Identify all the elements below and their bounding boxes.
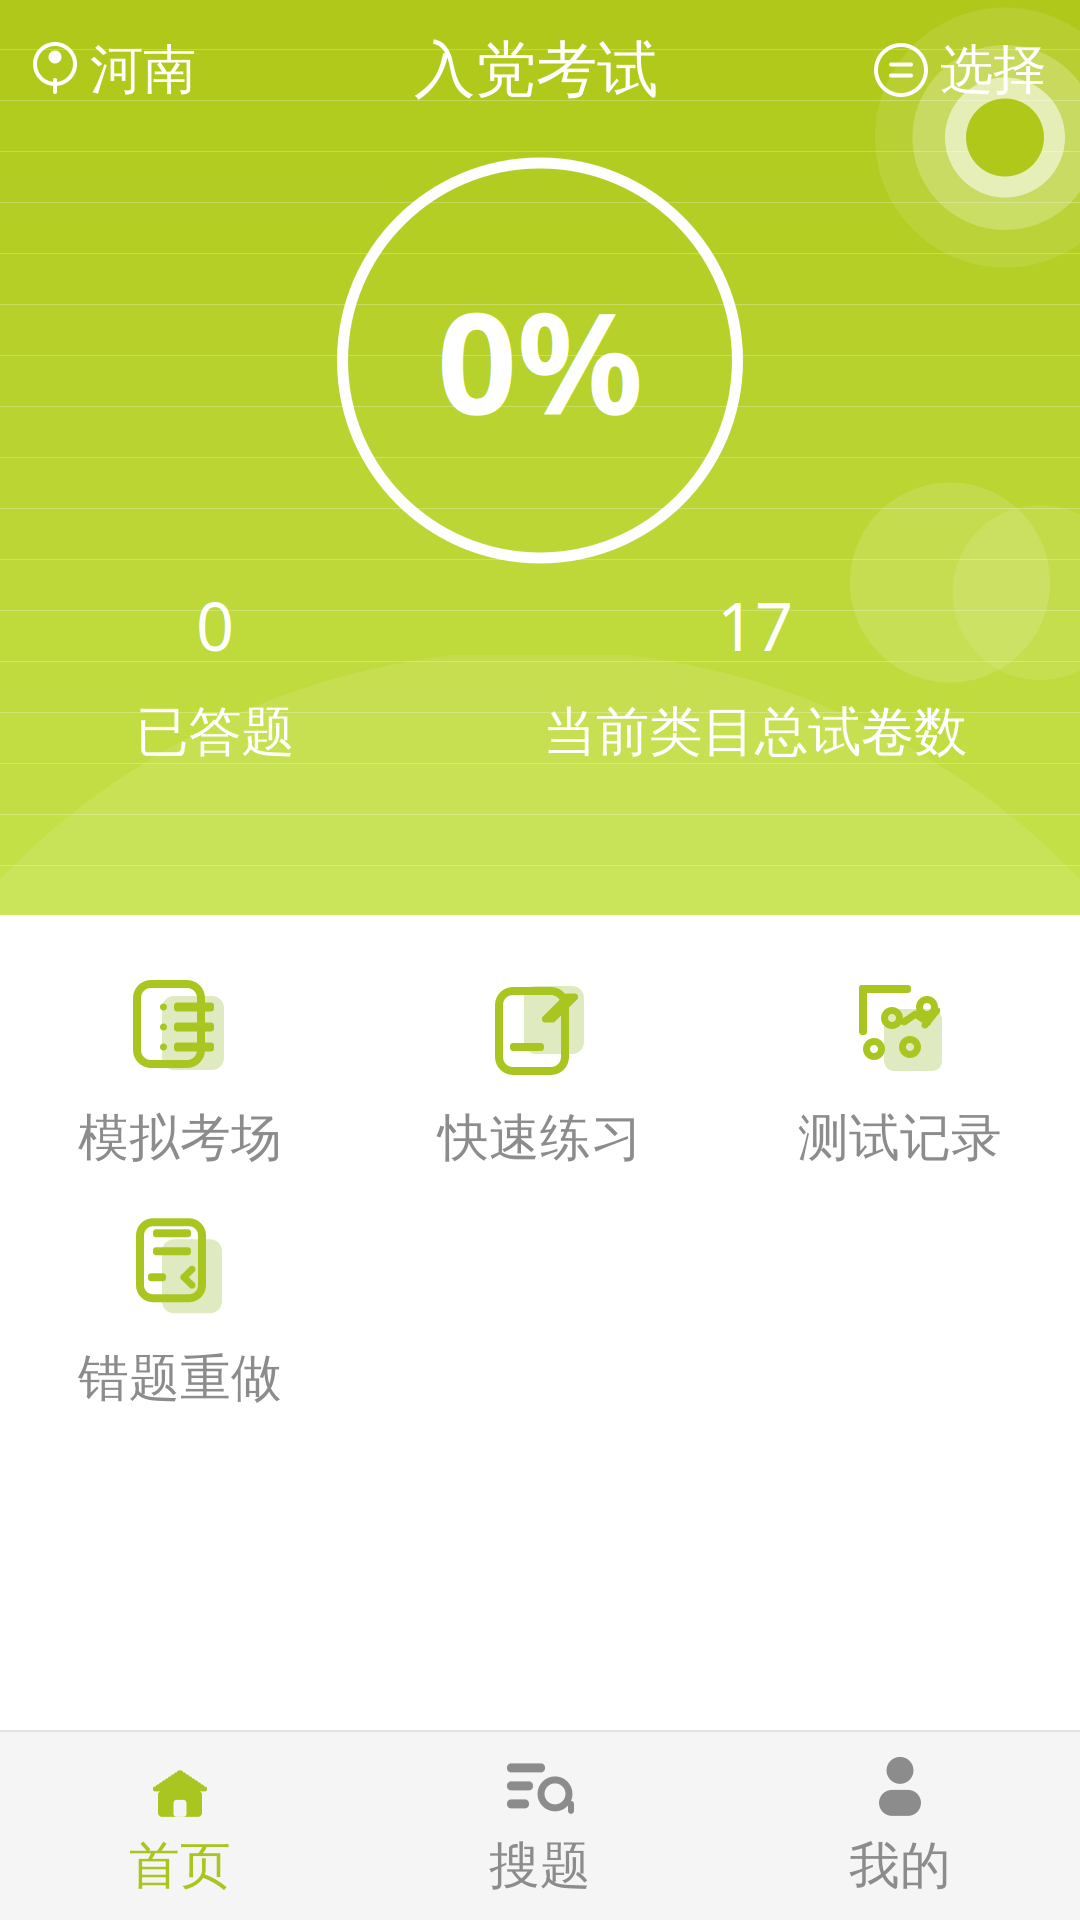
staticText: 河南 [90, 37, 196, 103]
button[interactable]: 测试记录 [720, 955, 1080, 1195]
button[interactable]: 我的 [720, 1732, 1080, 1920]
staticText: 已答题 [135, 699, 294, 765]
staticText: 入党考试 [414, 32, 658, 108]
staticText: 搜题 [489, 1835, 591, 1897]
button[interactable]: 首页 [0, 1732, 360, 1920]
button[interactable]: 河南 [0, 15, 216, 125]
button[interactable]: 错题重做 [0, 1195, 360, 1435]
staticText: 测试记录 [798, 1107, 1002, 1169]
button[interactable]: 模拟考场 [0, 955, 360, 1195]
staticText: 模拟考场 [78, 1107, 282, 1169]
staticText: 选择 [940, 37, 1046, 103]
staticText: 我的 [849, 1835, 951, 1897]
staticText: 当前类目总试卷数 [543, 699, 967, 765]
button[interactable]: 搜题 [360, 1732, 720, 1920]
staticText: 错题重做 [78, 1347, 282, 1409]
button[interactable]: 快速练习 [360, 955, 720, 1195]
staticText: 17 [717, 581, 793, 669]
staticText: 0% [437, 267, 643, 453]
staticText: 首页 [129, 1835, 231, 1897]
staticText: 快速练习 [438, 1107, 642, 1169]
staticText: 0 [196, 581, 234, 669]
button[interactable]: 选择 [856, 15, 1080, 125]
